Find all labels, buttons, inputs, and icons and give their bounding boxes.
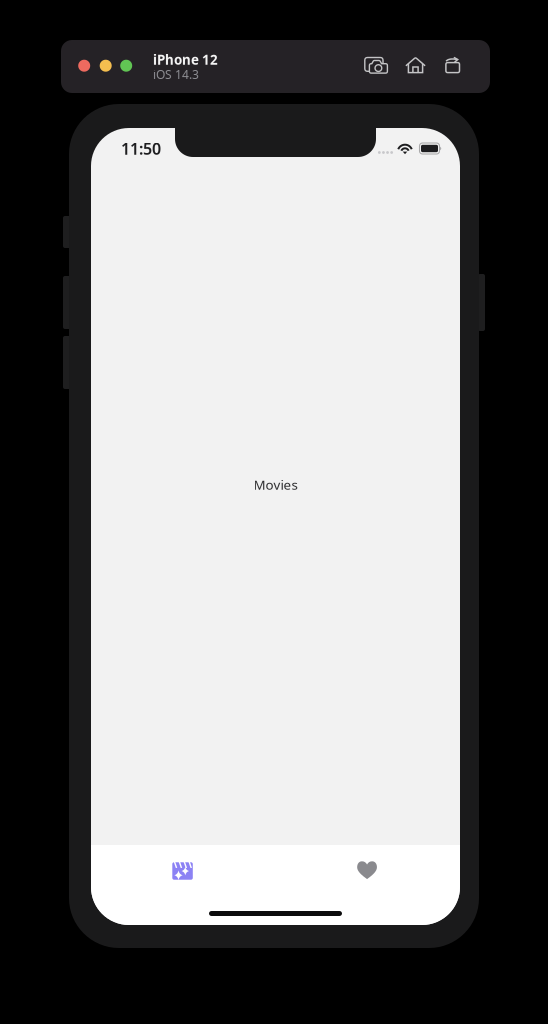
- staticText: iPhone 12: [153, 51, 218, 68]
- staticText: Movies: [253, 476, 297, 493]
- button[interactable]: Zoom: [116, 56, 136, 76]
- button[interactable]: Favorites: [275, 845, 460, 893]
- staticText: 11:50: [121, 138, 161, 159]
- staticText: iOS 14.3: [153, 66, 199, 82]
- button[interactable]: Screenshot: [359, 52, 394, 80]
- button[interactable]: Movies: [91, 845, 275, 893]
- button[interactable]: Rotate: [438, 52, 465, 79]
- button[interactable]: Close: [74, 56, 94, 76]
- button[interactable]: Minimize: [96, 56, 116, 76]
- button[interactable]: Home: [400, 52, 431, 79]
